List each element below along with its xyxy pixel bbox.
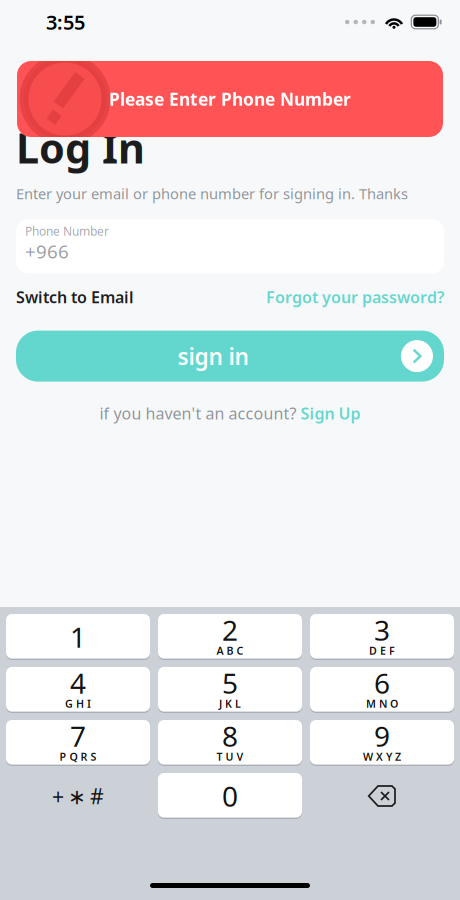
staticText: Phone Number — [25, 223, 109, 239]
button[interactable]: Forgot your password? — [266, 286, 444, 308]
button[interactable]: 1 — [6, 614, 150, 660]
staticText: D E F — [369, 643, 395, 658]
button[interactable]: Sign Up — [300, 403, 360, 424]
staticText: W X Y Z — [363, 749, 401, 764]
staticText: 3:55 — [46, 9, 85, 35]
staticText: Enter your email or phone number for sig… — [16, 184, 408, 203]
staticText: A B C — [216, 643, 243, 658]
staticText: sign in — [177, 341, 248, 371]
staticText: 6 — [374, 664, 390, 702]
staticText: 9 — [374, 717, 390, 755]
staticText: if you haven't an account? — [99, 403, 300, 424]
staticText: Please Enter Phone Number — [109, 87, 351, 110]
staticText: 1 — [70, 618, 86, 656]
button[interactable]: 9 — [310, 720, 454, 766]
button[interactable]: 8 — [158, 720, 302, 766]
staticText: 7 — [70, 717, 86, 755]
button[interactable]: Delete — [310, 773, 454, 819]
staticText: M N O — [366, 696, 398, 711]
staticText: 3 — [374, 611, 390, 649]
button[interactable]: Phone Number — [16, 219, 444, 273]
button[interactable]: Symbols — [6, 773, 150, 819]
button[interactable]: Switch to Email — [16, 286, 134, 308]
staticText: 0 — [222, 777, 238, 815]
staticText: G H I — [65, 696, 91, 711]
button[interactable]: 3 — [310, 614, 454, 660]
button[interactable]: 7 — [6, 720, 150, 766]
staticText: 8 — [222, 717, 238, 755]
staticText: T U V — [216, 749, 243, 764]
staticText: 2 — [222, 611, 238, 649]
staticText: 4 — [70, 664, 86, 702]
staticText: P Q R S — [59, 749, 96, 764]
button[interactable]: 5 — [158, 667, 302, 713]
staticText: J K L — [219, 696, 241, 711]
button[interactable]: 0 — [158, 773, 302, 819]
button[interactable]: 4 — [6, 667, 150, 713]
staticText: Switch to Email — [16, 286, 134, 308]
button[interactable]: 2 — [158, 614, 302, 660]
staticText: 5 — [222, 664, 238, 702]
staticText: Forgot your password? — [266, 286, 444, 308]
staticText: +966 — [25, 239, 69, 264]
button[interactable]: 6 — [310, 667, 454, 713]
button[interactable]: sign in — [16, 331, 444, 382]
staticText: Sign Up — [300, 403, 360, 424]
staticText: Log In — [16, 120, 145, 175]
staticText: + ∗ # — [52, 782, 104, 810]
